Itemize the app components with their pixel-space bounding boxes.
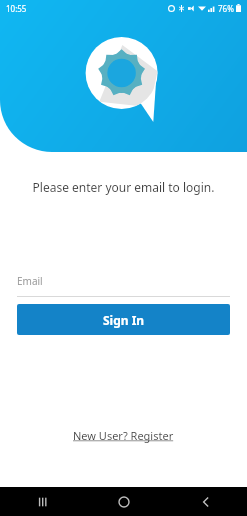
button[interactable]: Email <box>17 274 230 297</box>
staticText: Email <box>17 274 43 288</box>
button[interactable]: New User? Register <box>65 424 182 447</box>
staticText: New User? Register <box>73 428 174 443</box>
staticText: Please enter your email to login. <box>0 179 247 195</box>
staticText: 10:55 <box>6 3 27 14</box>
button[interactable]: Home <box>83 487 165 516</box>
staticText: 76% <box>218 3 234 14</box>
button[interactable]: Recent apps <box>0 487 83 516</box>
staticText: Sign In <box>103 312 145 328</box>
button[interactable]: Back <box>165 487 247 516</box>
button[interactable]: Sign In <box>17 304 230 335</box>
